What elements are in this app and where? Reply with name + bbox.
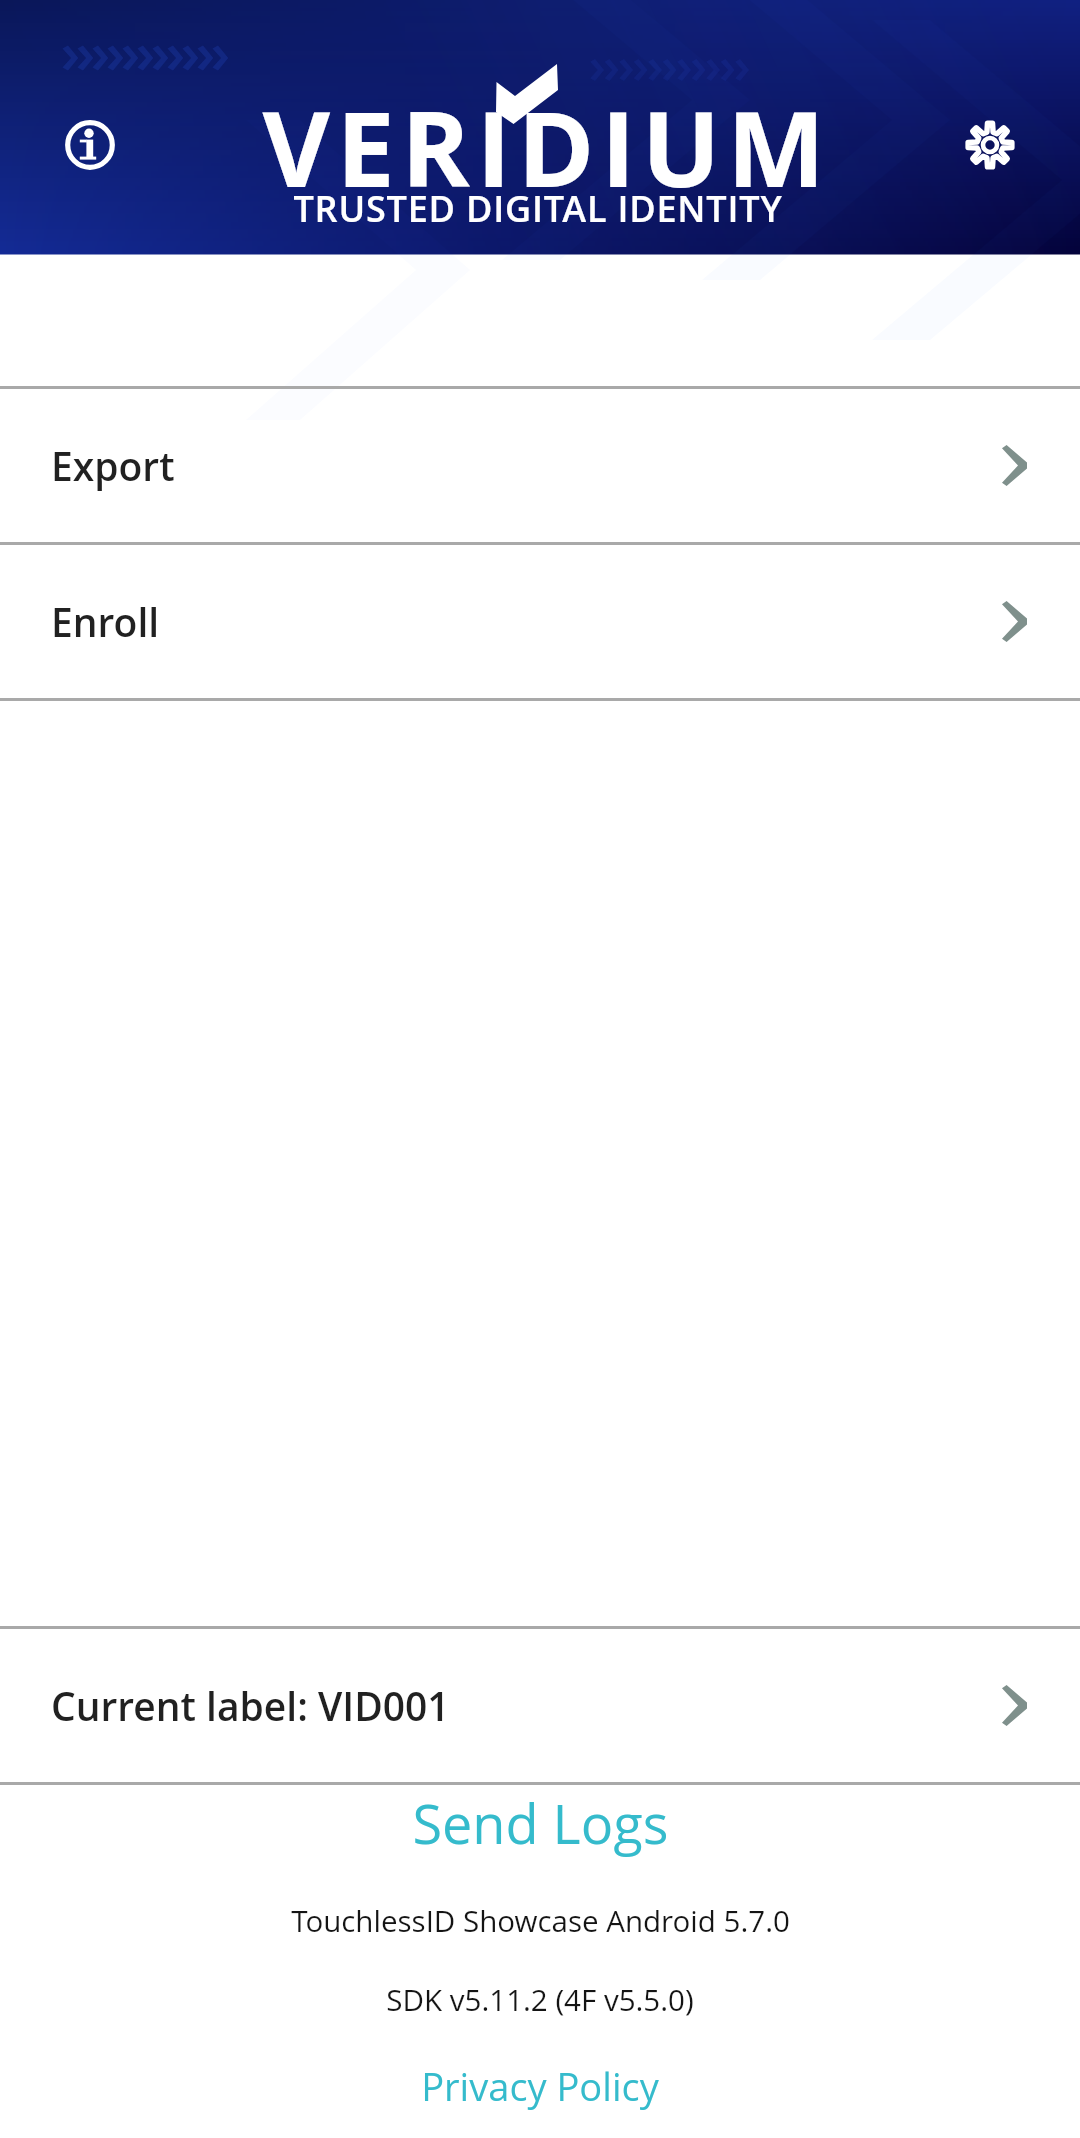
staticText: Export	[51, 439, 175, 492]
button[interactable]: Enroll	[0, 545, 1080, 698]
button[interactable]: Send Logs	[378, 1772, 703, 1874]
staticText: TRUSTED DIGITAL IDENTITY	[293, 184, 783, 233]
button[interactable]: Information	[44, 99, 135, 190]
staticText: Send Logs	[412, 1786, 669, 1860]
button[interactable]: Settings	[944, 99, 1035, 190]
staticText: TouchlessID Showcase Android 5.7.0	[291, 1900, 790, 1940]
button[interactable]: Current label: VID001	[0, 1629, 1080, 1782]
button[interactable]: Privacy Policy	[387, 2048, 693, 2124]
staticText: Enroll	[51, 595, 160, 648]
staticText: SDK v5.11.2 (4F v5.5.0)	[386, 1979, 694, 2019]
staticText: Current label: VID001	[51, 1679, 450, 1732]
staticText: VERIDIUM	[262, 76, 832, 218]
button[interactable]: Export	[0, 389, 1080, 542]
staticText: Privacy Policy	[421, 2060, 659, 2112]
